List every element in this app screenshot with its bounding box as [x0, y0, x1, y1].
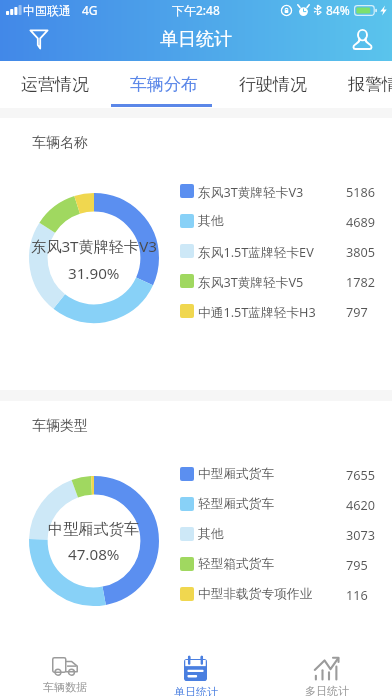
staticText: 行驶情况: [239, 74, 307, 95]
staticText: 下午2:48: [172, 2, 220, 18]
staticText: 车辆数据: [43, 680, 87, 694]
button[interactable]: 中型非载货专项作业: [180, 579, 392, 609]
button[interactable]: 其他: [180, 206, 392, 236]
staticText: 其他: [198, 213, 224, 229]
button[interactable]: 多日统计: [261, 640, 392, 696]
staticText: 报警情况: [348, 74, 392, 95]
staticText: 东风3T黄牌轻卡V3: [31, 236, 158, 257]
staticText: 1782: [346, 273, 376, 290]
staticText: 车辆名称: [32, 134, 88, 152]
button[interactable]: 中型厢式货车: [180, 459, 392, 489]
button[interactable]: 其他: [180, 519, 392, 549]
staticText: 中通1.5T蓝牌轻卡H3: [198, 303, 316, 320]
staticText: 3073: [346, 526, 376, 543]
staticText: 多日统计: [305, 684, 349, 696]
button[interactable]: 轻型厢式货车: [180, 489, 392, 519]
staticText: 其他: [198, 526, 224, 542]
button[interactable]: 东风3T黄牌轻卡V3: [180, 176, 392, 206]
button[interactable]: 东风3T黄牌轻卡V5: [180, 266, 392, 296]
staticText: 轻型箱式货车: [198, 556, 275, 572]
staticText: 单日统计: [174, 685, 218, 696]
staticText: 车辆类型: [32, 417, 88, 435]
staticText: 中型厢式货车: [48, 519, 140, 538]
button[interactable]: 车辆分布: [109, 61, 218, 108]
staticText: 797: [346, 303, 368, 320]
staticText: 795: [346, 556, 368, 573]
staticText: 3805: [346, 243, 376, 260]
staticText: 4620: [346, 496, 376, 513]
staticText: 7655: [346, 466, 376, 483]
staticText: 4689: [346, 213, 376, 230]
staticText: 中国联通: [23, 3, 71, 18]
staticText: 车辆分布: [130, 74, 198, 95]
staticText: 4G: [82, 2, 98, 18]
button[interactable]: 单日统计: [130, 640, 261, 696]
button[interactable]: 报警情况: [327, 61, 392, 108]
staticText: 东风3T黄牌轻卡V3: [198, 183, 304, 200]
staticText: 轻型厢式货车: [198, 496, 275, 512]
button[interactable]: 个人中心: [337, 18, 387, 61]
button[interactable]: 中通1.5T蓝牌轻卡H3: [180, 296, 392, 326]
staticText: 单日统计: [160, 28, 232, 51]
button[interactable]: 行驶情况: [218, 61, 327, 108]
staticText: 中型厢式货车: [198, 466, 275, 482]
staticText: 116: [346, 586, 368, 603]
staticText: 运营情况: [21, 74, 89, 95]
staticText: 31.90%: [68, 263, 120, 284]
staticText: 东风3T黄牌轻卡V5: [198, 273, 304, 290]
button[interactable]: 运营情况: [0, 61, 109, 108]
button[interactable]: 轻型箱式货车: [180, 549, 392, 579]
staticText: 中型非载货专项作业: [198, 586, 313, 602]
staticText: 东风1.5T蓝牌轻卡EV: [198, 243, 314, 260]
staticText: 47.08%: [68, 544, 120, 565]
button[interactable]: 东风1.5T蓝牌轻卡EV: [180, 236, 392, 266]
button[interactable]: 车辆数据: [0, 640, 130, 696]
staticText: 84%: [326, 2, 350, 18]
staticText: 5186: [346, 183, 376, 200]
button[interactable]: 筛选: [14, 18, 64, 61]
